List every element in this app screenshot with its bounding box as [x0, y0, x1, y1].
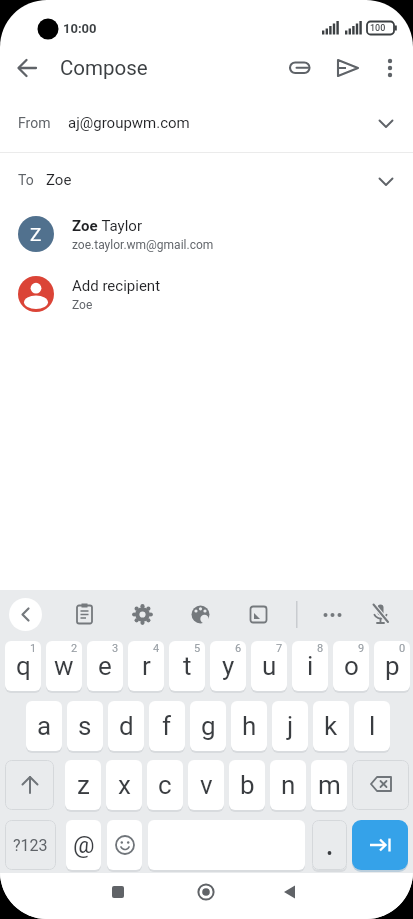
staticText: Taylor [98, 217, 142, 235]
staticText: Zoe [46, 171, 72, 189]
button[interactable]: q [5, 641, 41, 691]
button[interactable] [188, 602, 213, 627]
button[interactable]: o [333, 641, 369, 691]
staticText: p [385, 651, 400, 681]
staticText: @ [73, 831, 95, 859]
staticText: y [222, 651, 235, 681]
button[interactable]: t [169, 641, 205, 691]
staticText: 10:00 [63, 21, 97, 36]
staticText: g [201, 711, 216, 741]
button[interactable] [372, 50, 408, 86]
button[interactable]: l [354, 701, 390, 751]
button[interactable]: p [374, 641, 410, 691]
staticText: b [240, 770, 255, 800]
button[interactable]: b [229, 760, 265, 810]
button[interactable]: a [26, 701, 62, 751]
button[interactable] [72, 602, 97, 627]
staticText: q [16, 651, 31, 681]
button[interactable]: u [251, 641, 287, 691]
button[interactable]: e [87, 641, 123, 691]
button[interactable]: To [0, 153, 413, 208]
button[interactable]: z [65, 760, 101, 810]
button[interactable]: r [128, 641, 164, 691]
staticText: d [119, 711, 134, 741]
staticText: n [281, 770, 296, 800]
staticText: 8 [317, 642, 324, 655]
button[interactable]: @ [66, 820, 101, 870]
staticText: t [183, 651, 192, 681]
button[interactable] [184, 873, 228, 917]
button[interactable]: ?123 [5, 820, 56, 870]
staticText: s [78, 711, 92, 741]
button[interactable]: x [106, 760, 142, 810]
button[interactable] [312, 820, 347, 870]
staticText: x [118, 770, 131, 800]
button[interactable] [246, 602, 271, 627]
button[interactable]: h [231, 701, 267, 751]
staticText: Zoe [72, 298, 93, 312]
button[interactable]: Z [0, 204, 413, 264]
staticText: Add recipient [72, 277, 161, 295]
button[interactable] [320, 602, 345, 627]
staticText: 7 [276, 642, 283, 655]
button[interactable]: k [313, 701, 349, 751]
button[interactable]: Add recipient [0, 264, 413, 324]
staticText: 4 [153, 642, 160, 655]
button[interactable] [267, 873, 311, 917]
button[interactable] [5, 760, 54, 810]
button[interactable]: w [46, 641, 82, 691]
staticText: 5 [194, 642, 201, 655]
button[interactable]: d [108, 701, 144, 751]
button[interactable] [352, 760, 409, 810]
staticText: Zoe [72, 217, 98, 235]
staticText: a [37, 711, 52, 741]
button[interactable]: From [0, 97, 413, 152]
staticText: v [200, 770, 213, 800]
button[interactable] [96, 873, 140, 917]
button[interactable]: v [188, 760, 224, 810]
button[interactable]: n [270, 760, 306, 810]
staticText: 6 [235, 642, 242, 655]
button[interactable]: s [67, 701, 103, 751]
staticText: c [158, 770, 172, 800]
staticText: 100 [370, 23, 386, 34]
staticText: i [307, 651, 314, 681]
staticText: aj@groupwm.com [68, 114, 190, 132]
staticText: zoe.taylor.wm@gmail.com [72, 238, 214, 252]
staticText: l [369, 711, 376, 741]
button[interactable] [352, 820, 408, 870]
staticText: u [262, 651, 277, 681]
button[interactable]: y [210, 641, 246, 691]
staticText: w [54, 651, 74, 681]
staticText: ?123 [13, 836, 48, 855]
staticText: 3 [112, 642, 119, 655]
button[interactable] [282, 50, 318, 86]
button[interactable]: c [147, 760, 183, 810]
button[interactable] [368, 602, 393, 627]
staticText: z [77, 770, 90, 800]
staticText: j [287, 711, 294, 741]
staticText: k [324, 711, 338, 741]
staticText: 2 [71, 642, 78, 655]
staticText: Z [30, 223, 42, 245]
button[interactable] [9, 50, 45, 86]
staticText: From [18, 115, 51, 131]
button[interactable] [107, 820, 142, 870]
button[interactable]: m [311, 760, 347, 810]
button[interactable]: g [190, 701, 226, 751]
staticText: h [242, 711, 257, 741]
button[interactable] [9, 598, 42, 631]
button[interactable] [330, 50, 366, 86]
staticText: e [98, 651, 112, 681]
button[interactable] [130, 602, 155, 627]
button[interactable]: j [272, 701, 308, 751]
staticText: 9 [358, 642, 365, 655]
staticText: m [318, 770, 341, 800]
button[interactable]: f [149, 701, 185, 751]
staticText: Compose [60, 56, 148, 80]
staticText: 1 [30, 642, 37, 655]
staticText: o [344, 651, 359, 681]
button[interactable]: i [292, 641, 328, 691]
staticText: 0 [399, 642, 406, 655]
